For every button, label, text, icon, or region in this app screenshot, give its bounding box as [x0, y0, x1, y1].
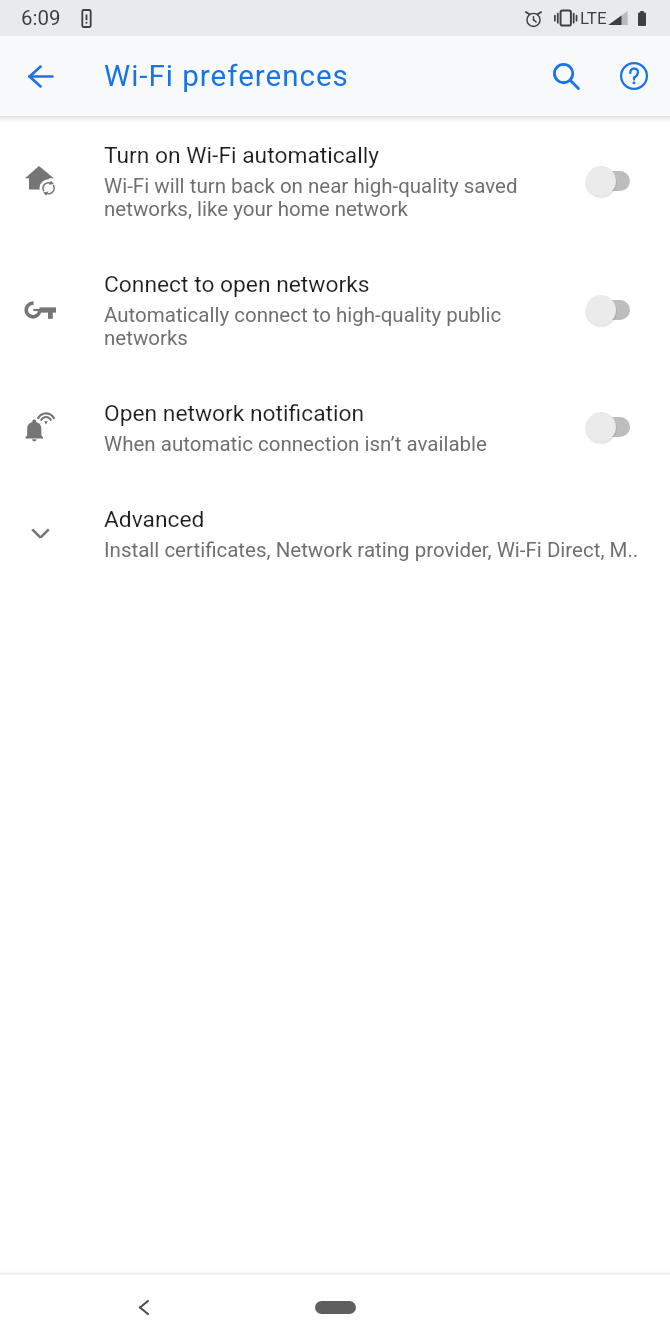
button[interactable]: Off: [584, 161, 630, 201]
button[interactable]: Search: [527, 47, 605, 105]
button[interactable]: Turn on Wi-Fi automatically: [0, 116, 670, 245]
button[interactable]: Home: [315, 1301, 356, 1314]
staticText: LTE: [580, 8, 607, 28]
button[interactable]: Open network notification: [0, 374, 670, 480]
staticText: Wi-Fi will turn back on near high-qualit…: [104, 174, 578, 221]
staticText: When automatic connection isn’t availabl…: [104, 432, 487, 456]
staticText: Open network notification: [104, 400, 365, 427]
button[interactable]: Off: [584, 407, 630, 447]
button[interactable]: Connect to open networks: [0, 245, 670, 374]
staticText: Wi-Fi preferences: [104, 59, 349, 94]
staticText: Connect to open networks: [104, 271, 370, 298]
button[interactable]: Back: [123, 1287, 164, 1328]
button[interactable]: Help: [605, 47, 663, 105]
staticText: Install certificates, Network rating pro…: [104, 538, 639, 562]
button[interactable]: Advanced: [0, 480, 670, 586]
staticText: Automatically connect to high-quality pu…: [104, 303, 578, 350]
staticText: 6:09: [21, 6, 61, 30]
button[interactable]: Navigate up: [15, 50, 67, 102]
button[interactable]: Off: [584, 290, 630, 330]
staticText: Turn on Wi-Fi automatically: [104, 142, 379, 169]
staticText: Advanced: [104, 506, 205, 533]
